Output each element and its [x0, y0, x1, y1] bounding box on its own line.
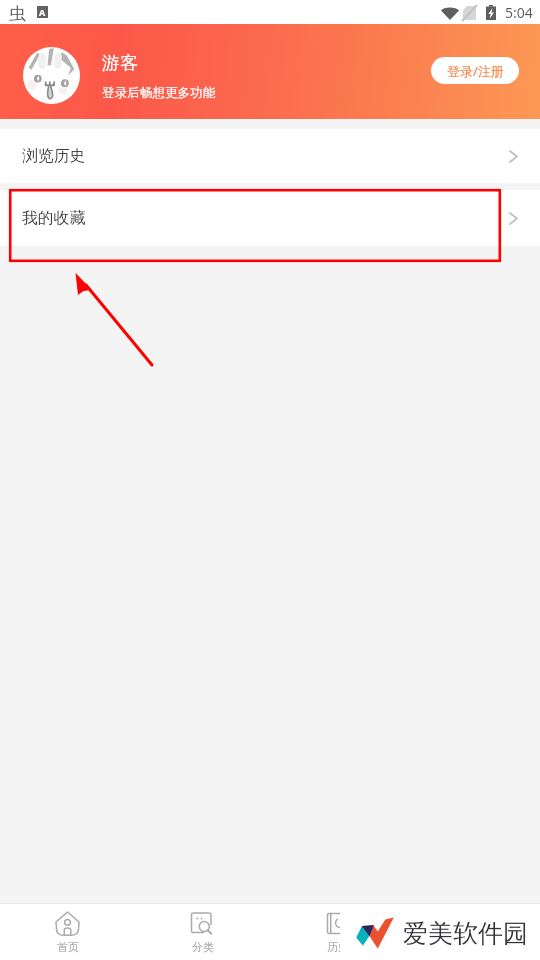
staticText: 爱美软件园 [403, 918, 528, 949]
staticText: 历史 [327, 940, 349, 954]
button[interactable]: 我的 [405, 904, 540, 960]
staticText: 5:04 [505, 3, 533, 22]
button[interactable]: 分类 [135, 904, 270, 960]
staticText: 首页 [57, 940, 79, 954]
button[interactable]: 历史 [270, 904, 405, 960]
staticText: 游客 [102, 52, 138, 75]
button[interactable]: 浏览历史 [0, 129, 540, 183]
staticText: 我的收藏 [22, 208, 86, 228]
staticText: 分类 [192, 940, 214, 954]
staticText: 虫 [9, 3, 26, 24]
staticText: 登录/注册 [447, 62, 504, 80]
staticText: 我的 [462, 940, 484, 954]
staticText: 浏览历史 [22, 146, 86, 166]
button[interactable]: 登录/注册 [431, 57, 519, 84]
staticText: 登录后畅想更多功能 [102, 85, 216, 101]
button[interactable]: 我的收藏 [0, 190, 540, 246]
staticText: A [39, 6, 46, 18]
button[interactable]: 首页 [0, 904, 135, 960]
